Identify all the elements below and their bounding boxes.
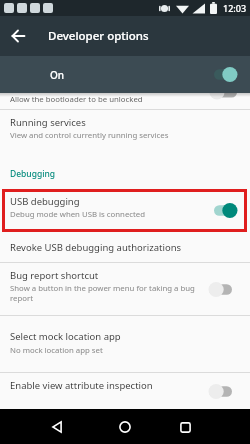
button[interactable] [116,418,134,436]
staticText: Bug report shortcut [10,269,99,282]
button[interactable] [212,202,239,219]
staticText: Debugging [10,168,56,180]
staticText: On [50,68,65,82]
staticText: View and control currently running servi… [10,130,169,141]
button[interactable] [48,418,66,436]
staticText: Show a button in the power menu for taki… [10,283,195,294]
button[interactable]: USB debugging [0,189,250,231]
button[interactable] [8,26,28,46]
button[interactable] [207,383,234,400]
staticText: Debug mode when USB is connected [10,209,146,220]
staticText: Developer options [48,28,149,44]
button[interactable]: Enable view attribute inspection [0,373,250,409]
staticText: Allow the bootloader to be unlocked [10,94,143,105]
staticText: Select mock location app [10,330,121,343]
staticText: USB debugging [10,195,80,208]
staticText: report [10,293,34,304]
staticText: Running services [10,116,86,129]
staticText: Revoke USB debugging authorizations [10,241,182,254]
button[interactable]: Allow the bootloader to be unlocked [0,93,250,109]
staticText: Enable view attribute inspection [10,379,153,392]
button[interactable]: Bug report shortcut [0,263,250,315]
staticText: 12:03 [223,2,247,14]
button[interactable] [207,281,234,298]
button[interactable]: Revoke USB debugging authorizations [0,231,250,262]
staticText: No mock location app set [10,345,103,356]
button[interactable]: On [0,56,250,93]
button[interactable] [212,66,239,83]
button[interactable]: Select mock location app [0,316,250,372]
button[interactable] [176,418,194,436]
button[interactable]: Running services [0,110,250,148]
